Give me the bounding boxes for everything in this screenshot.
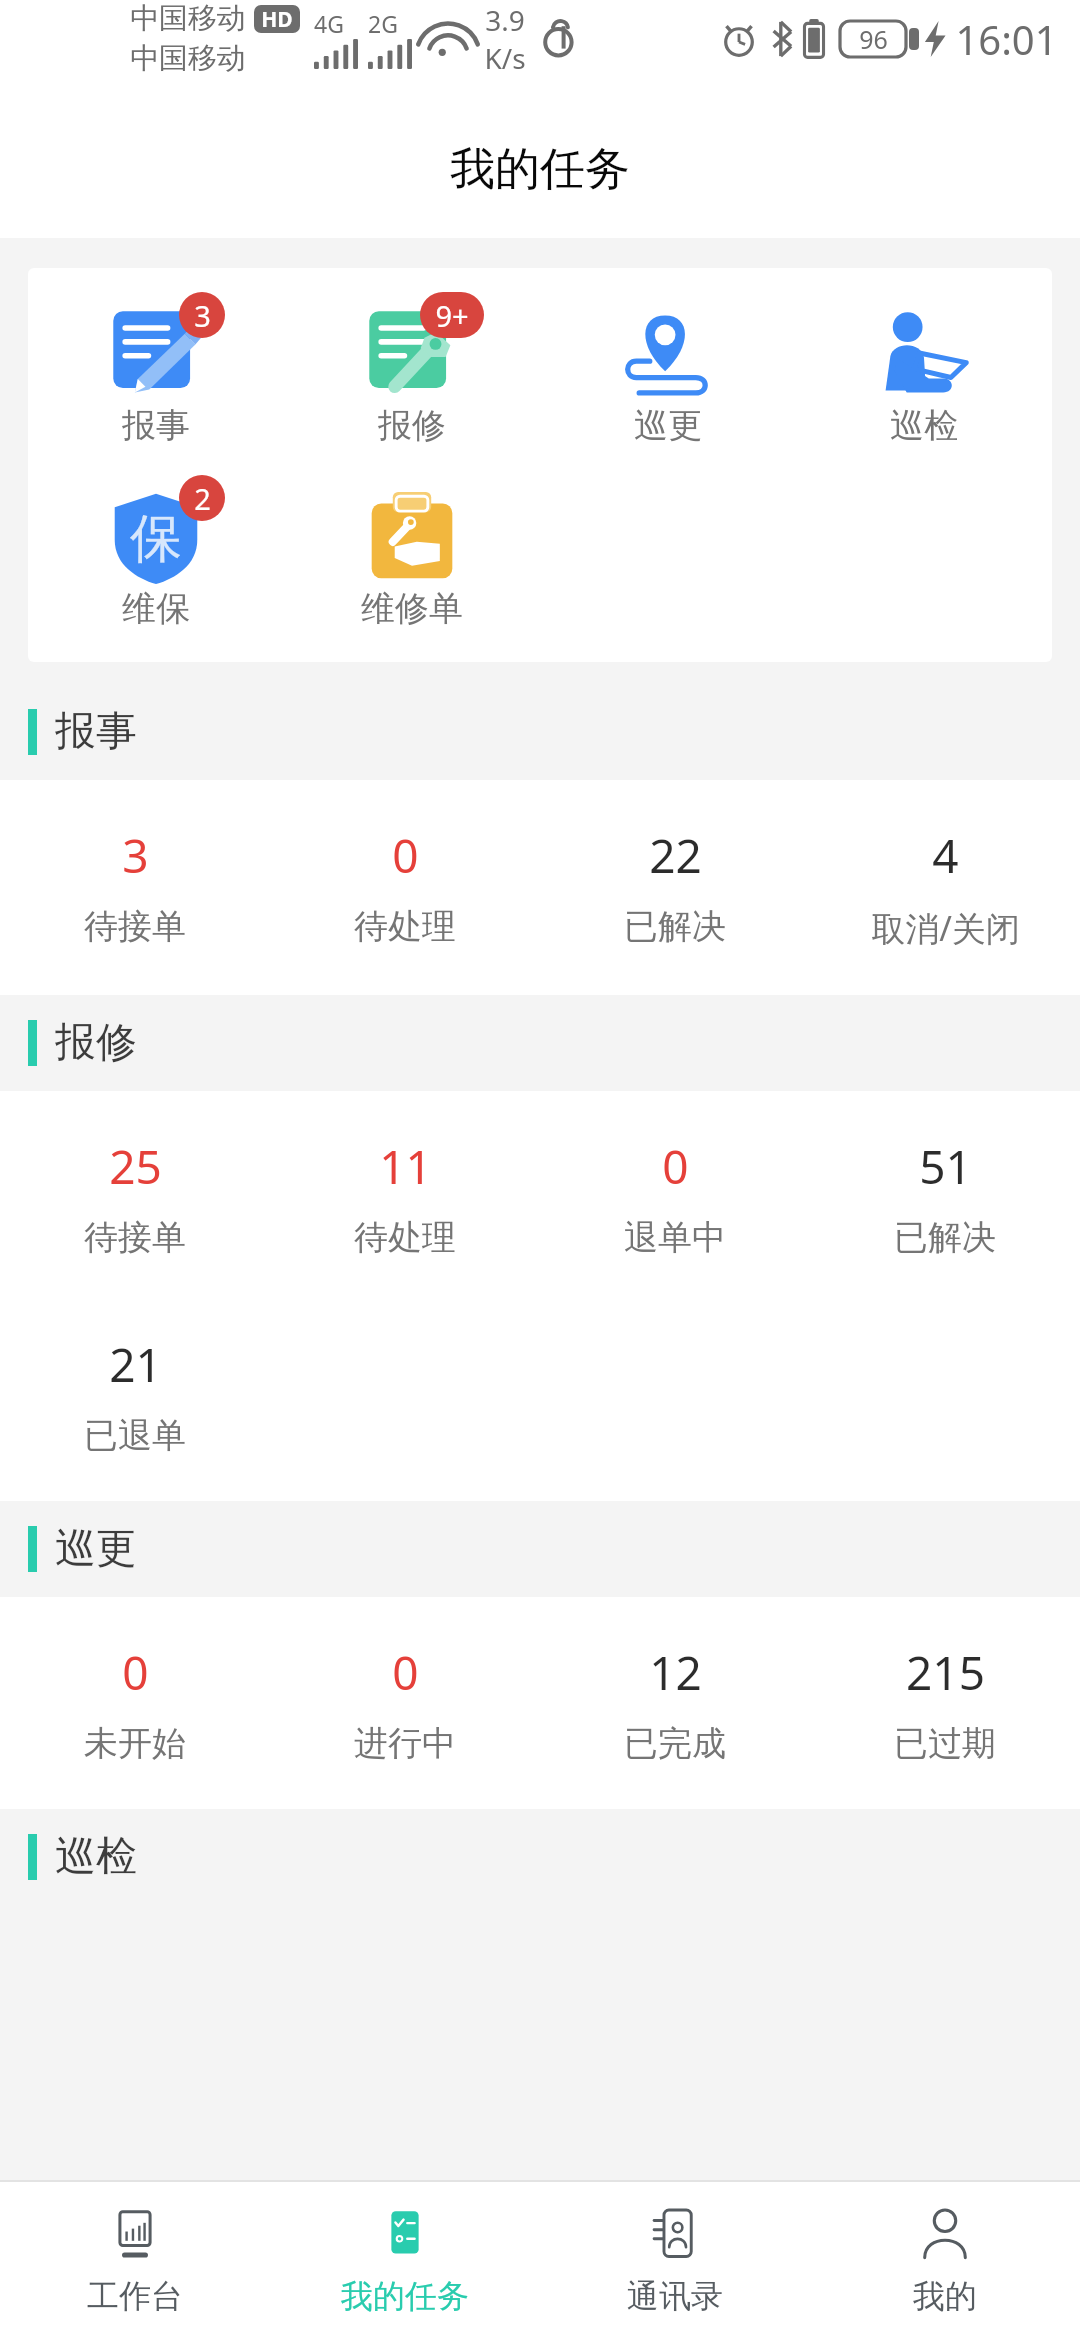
staticText: 3: [122, 824, 149, 887]
button[interactable]: 11: [270, 1135, 540, 1259]
staticText: 待接单: [84, 1216, 186, 1259]
staticText: HD: [261, 5, 293, 33]
staticText: 9+: [435, 296, 469, 335]
staticText: 0: [662, 1135, 689, 1198]
staticText: 16:01: [955, 12, 1058, 66]
staticText: 已退单: [84, 1414, 186, 1457]
staticText: 通讯录: [627, 2276, 723, 2316]
staticText: 21: [109, 1333, 162, 1396]
button[interactable]: 51: [810, 1135, 1080, 1259]
button[interactable]: 工作台: [0, 2182, 270, 2316]
button[interactable]: 我的: [810, 2182, 1080, 2316]
button[interactable]: 巡检: [0, 1809, 1080, 1905]
staticText: K/s: [484, 39, 526, 77]
staticText: 25: [109, 1135, 162, 1198]
button[interactable]: 报修: [0, 995, 1080, 1091]
button[interactable]: 巡更: [0, 1501, 1080, 1597]
staticText: 0: [122, 1641, 149, 1704]
button[interactable]: 巡更: [540, 276, 796, 459]
staticText: 2G: [368, 8, 398, 39]
staticText: 待处理: [354, 905, 456, 948]
staticText: 我的: [913, 2276, 977, 2316]
staticText: 0: [392, 1641, 419, 1704]
staticText: 中国移动: [130, 0, 246, 37]
button[interactable]: 4: [810, 824, 1080, 951]
staticText: 取消/关闭: [871, 905, 1020, 951]
button[interactable]: 215: [810, 1641, 1080, 1765]
staticText: 巡检: [55, 1831, 137, 1883]
button[interactable]: 0: [0, 1641, 270, 1765]
button[interactable]: 3: [0, 824, 270, 948]
staticText: 工作台: [87, 2276, 183, 2316]
staticText: 报事: [55, 706, 137, 758]
staticText: 51: [919, 1135, 972, 1198]
button[interactable]: 维修单: [284, 459, 540, 642]
staticText: 保: [130, 506, 182, 572]
button[interactable]: 报事: [0, 684, 1080, 780]
staticText: 4G: [314, 8, 344, 39]
staticText: 215: [906, 1641, 985, 1704]
staticText: 待处理: [354, 1216, 456, 1259]
staticText: 96: [859, 22, 888, 56]
button[interactable]: 21: [0, 1333, 270, 1457]
button[interactable]: 我的任务: [270, 2182, 540, 2316]
staticText: 已完成: [624, 1722, 726, 1765]
staticText: 报修: [378, 404, 446, 447]
button[interactable]: 9+: [284, 276, 540, 459]
button[interactable]: 巡检: [796, 276, 1052, 459]
staticText: 维修单: [361, 587, 463, 630]
button[interactable]: 0: [270, 824, 540, 948]
staticText: 11: [379, 1135, 432, 1198]
staticText: 3: [194, 296, 211, 335]
staticText: 我的任务: [341, 2276, 469, 2316]
button[interactable]: 12: [540, 1641, 810, 1765]
staticText: 未开始: [84, 1722, 186, 1765]
staticText: 待接单: [84, 905, 186, 948]
staticText: 巡更: [634, 404, 702, 447]
button[interactable]: 保: [28, 459, 284, 642]
staticText: 巡更: [55, 1523, 137, 1575]
staticText: 巡检: [890, 404, 958, 447]
staticText: 进行中: [354, 1722, 456, 1765]
staticText: 报事: [122, 404, 190, 447]
button[interactable]: 0: [540, 1135, 810, 1259]
button[interactable]: 22: [540, 824, 810, 948]
staticText: 12: [649, 1641, 702, 1704]
staticText: 2: [194, 479, 211, 518]
staticText: 已解决: [624, 905, 726, 948]
button[interactable]: 通讯录: [540, 2182, 810, 2316]
staticText: 退单中: [624, 1216, 726, 1259]
staticText: 3.9: [485, 1, 525, 39]
button[interactable]: 25: [0, 1135, 270, 1259]
staticText: 已解决: [894, 1216, 996, 1259]
staticText: 报修: [55, 1017, 137, 1069]
button[interactable]: 3: [28, 276, 284, 459]
staticText: 4: [932, 824, 959, 887]
staticText: 0: [392, 824, 419, 887]
button[interactable]: 0: [270, 1641, 540, 1765]
staticText: 22: [649, 824, 702, 887]
staticText: 我的任务: [450, 141, 630, 198]
staticText: 维保: [122, 587, 190, 630]
staticText: 中国移动: [130, 40, 246, 77]
staticText: 已过期: [894, 1722, 996, 1765]
